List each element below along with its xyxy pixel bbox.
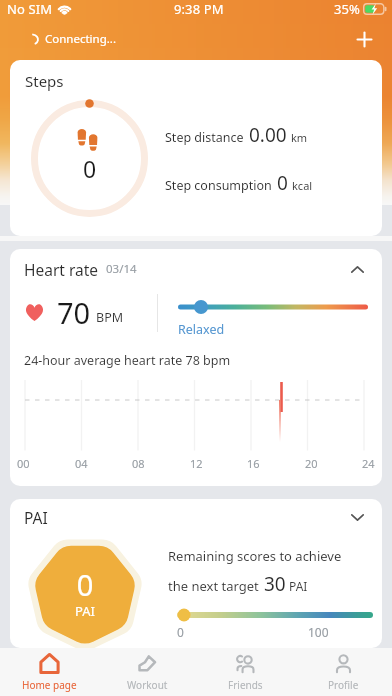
staticText: Remaining scores to achieve <box>168 547 342 565</box>
staticText: 16 <box>247 456 260 471</box>
staticText: Step distance <box>165 129 244 146</box>
button[interactable]: Workout <box>98 648 196 696</box>
staticText: PAI <box>24 507 48 528</box>
staticText: 03/14 <box>106 261 137 277</box>
button[interactable]: Collapse heart rate <box>344 256 370 282</box>
staticText: Heart rate <box>24 259 99 280</box>
staticText: Step consumption <box>165 177 272 194</box>
staticText: km <box>291 130 308 145</box>
staticText: 0 <box>28 565 142 604</box>
button[interactable]: Steps <box>10 60 382 236</box>
staticText: 30 <box>264 571 286 597</box>
staticText: Relaxed <box>178 321 225 338</box>
button[interactable]: Friends <box>196 648 294 696</box>
staticText: 0.00 <box>249 122 287 148</box>
button[interactable]: Profile <box>294 648 392 696</box>
staticText: 20 <box>305 456 318 471</box>
staticText: the next target <box>168 577 259 595</box>
staticText: Workout <box>127 678 168 692</box>
staticText: Profile <box>328 678 359 692</box>
staticText: BPM <box>96 309 124 326</box>
staticText: 9:38 PM <box>174 0 224 18</box>
staticText: Connecting... <box>45 31 116 47</box>
staticText: 00 <box>17 456 30 471</box>
staticText: 0 <box>277 170 288 196</box>
staticText: kcal <box>292 178 313 193</box>
staticText: PAI <box>28 602 142 620</box>
staticText: 04 <box>75 456 88 471</box>
staticText: 100 <box>308 624 329 640</box>
staticText: Friends <box>228 678 263 692</box>
staticText: No SIM <box>7 0 53 18</box>
staticText: PAI <box>289 578 308 594</box>
button[interactable]: Expand PAI <box>344 504 370 530</box>
staticText: Home page <box>22 678 77 692</box>
button[interactable]: Add device <box>349 24 379 54</box>
staticText: Steps <box>25 71 64 91</box>
staticText: 24 <box>362 456 375 471</box>
staticText: 0 <box>177 624 184 640</box>
button[interactable]: Home page <box>0 648 98 696</box>
staticText: 70 <box>57 293 91 332</box>
staticText: 0 <box>31 153 148 184</box>
staticText: 08 <box>132 456 145 471</box>
staticText: 24-hour average heart rate 78 bpm <box>24 352 231 369</box>
staticText: 12 <box>190 456 203 471</box>
staticText: 35% <box>334 0 360 18</box>
